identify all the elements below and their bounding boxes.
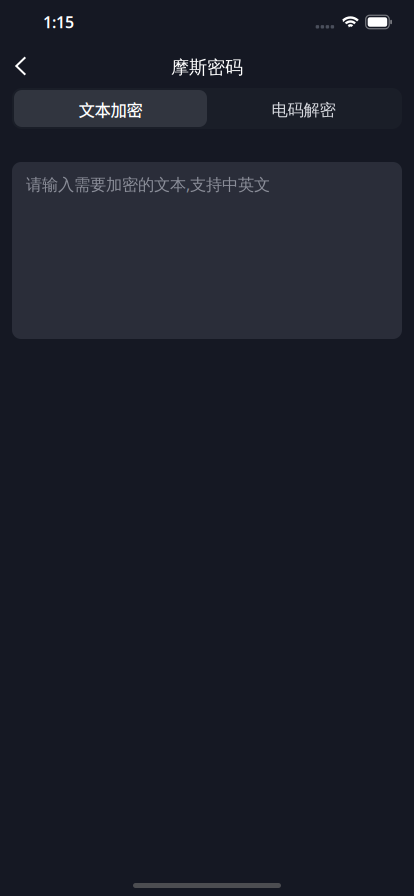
staticText: 摩斯密码 (171, 56, 243, 79)
button[interactable]: 文本加密 (14, 90, 207, 127)
button[interactable]: 请输入需要加密的文本,支持中英文 (12, 162, 402, 339)
staticText: 请输入需要加密的文本,支持中英文 (26, 173, 270, 195)
staticText: 1:15 (43, 11, 74, 33)
staticText: 文本加密 (78, 97, 142, 121)
button[interactable]: 电码解密 (207, 90, 400, 127)
staticText: 电码解密 (271, 100, 335, 120)
button[interactable]: Back (0, 44, 44, 88)
